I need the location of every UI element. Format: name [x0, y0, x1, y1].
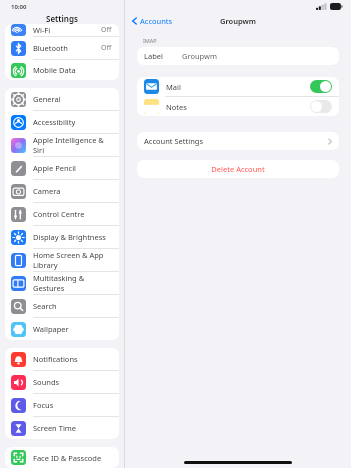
button[interactable]: Face ID & Passcode: [5, 447, 119, 468]
button[interactable]: Accessibility: [5, 111, 119, 134]
button[interactable]: General: [5, 88, 119, 111]
staticText: Sounds: [33, 377, 60, 387]
button[interactable]: Apple Pencil: [5, 157, 119, 180]
button[interactable]: Sounds: [5, 371, 119, 394]
button[interactable]: Search: [5, 295, 119, 318]
staticText: Accounts: [140, 16, 173, 26]
staticText: Mobile Data: [33, 65, 76, 75]
staticText: Notes: [166, 102, 187, 112]
button[interactable]: Mobile Data: [5, 60, 119, 80]
staticText: Control Centre: [33, 209, 85, 219]
staticText: Label: [144, 51, 163, 61]
staticText: Multitasking & Gestures: [33, 273, 112, 293]
staticText: Account Settings: [144, 136, 203, 146]
button[interactable]: Mail enabled: [310, 80, 332, 93]
staticText: Notifications: [33, 354, 78, 364]
button[interactable]: Display & Brightness: [5, 226, 119, 249]
button[interactable]: Wi-Fi: [11, 24, 112, 36]
button[interactable]: Focus: [5, 394, 119, 417]
staticText: Accessibility: [33, 117, 76, 127]
staticText: Off: [101, 43, 112, 53]
staticText: Wi-Fi: [33, 25, 51, 35]
button[interactable]: Wallpaper: [5, 318, 119, 340]
staticText: Mail: [166, 82, 181, 92]
staticText: Apple Pencil: [33, 163, 77, 173]
staticText: Wallpaper: [33, 324, 69, 334]
button[interactable]: Mail: [137, 77, 339, 96]
button[interactable]: Notes: [137, 97, 339, 116]
staticText: 10:00: [11, 3, 27, 11]
staticText: General: [33, 94, 61, 104]
button[interactable]: Delete Account: [137, 160, 339, 178]
button[interactable]: Camera: [5, 180, 119, 203]
staticText: Groupwm: [182, 51, 217, 61]
button[interactable]: Home Screen & App Library: [5, 249, 119, 272]
staticText: Off: [101, 25, 112, 35]
button[interactable]: Control Centre: [5, 203, 119, 226]
button[interactable]: Notifications: [5, 348, 119, 371]
staticText: Face ID & Passcode: [33, 453, 102, 463]
staticText: Apple Intelligence & Siri: [33, 135, 112, 155]
staticText: Display & Brightness: [33, 232, 106, 242]
staticText: Home Screen & App Library: [33, 250, 112, 270]
button[interactable]: Label: [137, 47, 339, 65]
staticText: Search: [33, 301, 57, 311]
button[interactable]: Accounts: [130, 14, 175, 28]
staticText: Focus: [33, 400, 54, 410]
button[interactable]: Screen Time: [5, 417, 119, 439]
staticText: Delete Account: [211, 164, 265, 174]
staticText: Settings: [46, 13, 78, 24]
staticText: Groupwm: [220, 16, 256, 26]
button[interactable]: Bluetooth: [5, 37, 119, 60]
button[interactable]: Account Settings: [137, 132, 339, 150]
staticText: Bluetooth: [33, 43, 68, 53]
staticText: Screen Time: [33, 423, 77, 433]
button[interactable]: Notes disabled: [310, 100, 332, 113]
button[interactable]: Apple Intelligence & Siri: [5, 134, 119, 157]
staticText: Camera: [33, 186, 61, 196]
button[interactable]: Multitasking & Gestures: [5, 272, 119, 295]
staticText: IMAP: [143, 37, 157, 44]
